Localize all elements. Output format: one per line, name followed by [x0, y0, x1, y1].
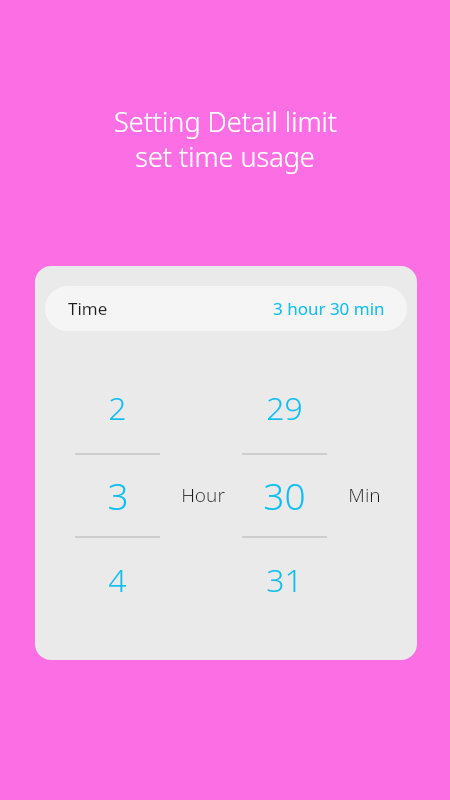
staticText: 29 — [266, 386, 303, 430]
staticText: 3 hour 30 min — [273, 297, 385, 320]
button[interactable]: Minute 29 — [242, 379, 327, 437]
staticText: 4 — [108, 558, 127, 602]
staticText: 31 — [266, 558, 303, 602]
button[interactable]: Hour 3 selected — [75, 466, 160, 524]
staticText: 2 — [108, 386, 127, 430]
button[interactable]: Time — [45, 286, 407, 331]
button[interactable]: Minute 30 selected — [242, 466, 327, 524]
staticText: Hour — [181, 482, 225, 508]
button[interactable]: Hour 2 — [75, 379, 160, 437]
staticText: Min — [348, 482, 381, 508]
staticText: Setting Detail limit — [114, 103, 337, 140]
button[interactable]: Minute 31 — [242, 551, 327, 609]
staticText: set time usage — [135, 138, 315, 175]
staticText: 30 — [263, 470, 306, 520]
staticText: 3 — [107, 470, 129, 520]
button[interactable]: Hour 4 — [75, 551, 160, 609]
staticText: Time — [68, 297, 108, 320]
